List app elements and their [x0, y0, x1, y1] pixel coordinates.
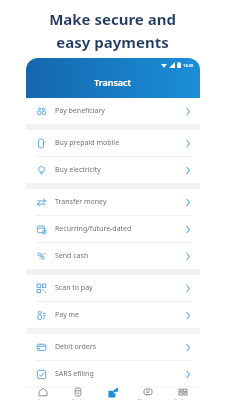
- staticText: Scan to pay: [55, 283, 93, 293]
- staticText: Transfer money: [55, 197, 107, 207]
- button[interactable]: Scan to pay: [26, 275, 200, 301]
- button[interactable]: Cards: [60, 387, 95, 400]
- staticText: Home: [37, 398, 49, 400]
- button[interactable]: Messages: [130, 387, 165, 400]
- button[interactable]: Recurring/future-dated: [26, 216, 200, 242]
- button[interactable]: Explore: [165, 387, 200, 400]
- staticText: 12:30: [183, 63, 194, 68]
- staticText: Send cash: [55, 251, 89, 261]
- staticText: Buy prepaid mobile: [55, 138, 120, 148]
- staticText: Debit orders: [55, 342, 96, 352]
- staticText: Cards: [72, 398, 83, 400]
- button[interactable]: Debit orders: [26, 334, 200, 360]
- button[interactable]: Pay me: [26, 302, 200, 328]
- button[interactable]: Buy electricity: [26, 157, 200, 183]
- staticText: Explore: [175, 398, 190, 400]
- button[interactable]: SARS efiling: [26, 361, 200, 387]
- staticText: Messages: [138, 398, 157, 400]
- button[interactable]: Pay beneficiary: [26, 98, 200, 124]
- staticText: SARS efiling: [55, 369, 94, 379]
- staticText: Recurring/future-dated: [55, 224, 132, 234]
- button[interactable]: Home: [26, 387, 60, 400]
- button[interactable]: Transfer money: [26, 189, 200, 215]
- staticText: Pay me: [55, 310, 80, 320]
- staticText: Pay beneficiary: [55, 106, 105, 116]
- button[interactable]: Send cash: [26, 243, 200, 269]
- button[interactable]: Buy prepaid mobile: [26, 130, 200, 156]
- staticText: Make secure and: [49, 9, 176, 29]
- staticText: Transact: [94, 76, 132, 88]
- button[interactable]: Transact: [95, 387, 130, 400]
- staticText: easy payments: [56, 32, 169, 52]
- staticText: Buy electricity: [55, 165, 101, 175]
